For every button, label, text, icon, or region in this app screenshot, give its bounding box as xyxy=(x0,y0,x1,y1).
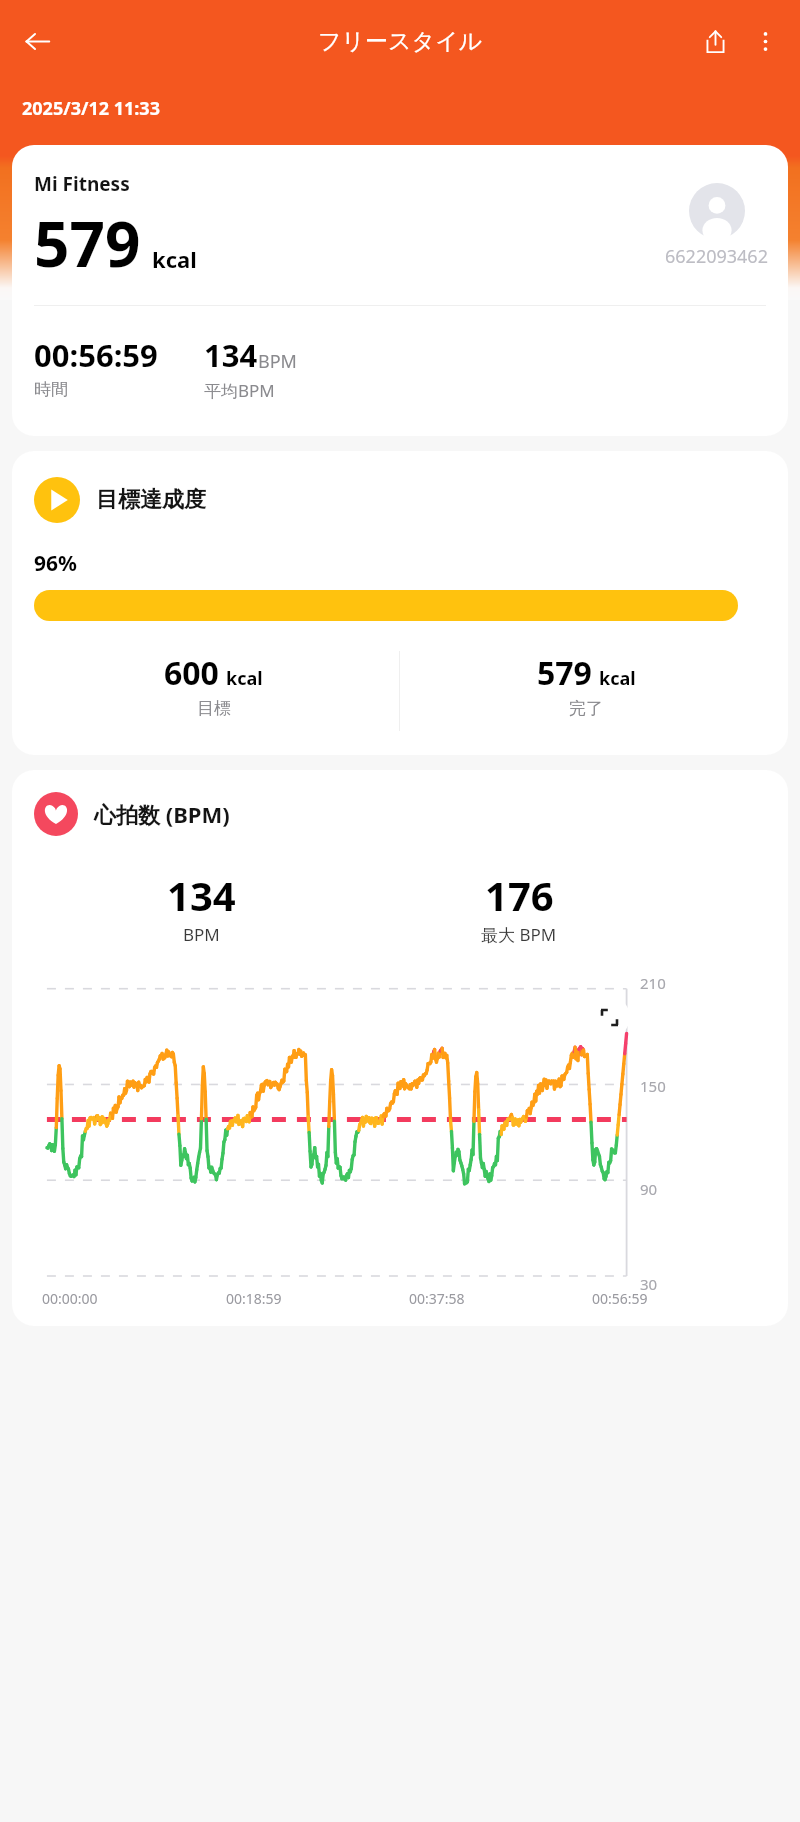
staticText: 最大 BPM xyxy=(481,923,557,946)
staticText: 600 xyxy=(164,651,219,695)
staticText: kcal xyxy=(599,666,636,691)
staticText: 134 xyxy=(167,868,236,922)
staticText: 176 xyxy=(485,868,554,922)
staticText: 579 xyxy=(34,201,141,285)
staticText: 579 xyxy=(537,651,592,695)
staticText: 00:56:59 xyxy=(34,334,158,376)
staticText: BPM xyxy=(258,349,297,374)
staticText: 2025/3/12 11:33 xyxy=(22,96,160,121)
staticText: 96% xyxy=(34,549,77,578)
staticText: Mi Fitness xyxy=(34,171,130,197)
staticText: 00:00:00 xyxy=(42,1289,226,1308)
staticText: 90 xyxy=(640,1179,658,1199)
staticText: 30 xyxy=(640,1274,658,1294)
button[interactable]: Fullscreen xyxy=(588,996,630,1038)
staticText: 平均BPM xyxy=(204,379,275,402)
staticText: 00:37:58 xyxy=(409,1289,592,1308)
button[interactable]: Back xyxy=(12,16,62,66)
staticText: 6622093462 xyxy=(665,244,768,269)
staticText: フリースタイル xyxy=(318,27,483,56)
staticText: 00:56:59 xyxy=(592,1289,648,1308)
button[interactable]: Share xyxy=(690,16,740,66)
button[interactable]: More options xyxy=(740,16,790,66)
staticText: kcal xyxy=(226,666,263,691)
staticText: kcal xyxy=(152,244,197,274)
staticText: BPM xyxy=(183,923,220,946)
staticText: 目標 xyxy=(197,698,231,719)
staticText: 134 xyxy=(204,334,258,376)
staticText: 心拍数 (BPM) xyxy=(94,799,230,829)
staticText: 00:18:59 xyxy=(226,1289,409,1308)
staticText: 150 xyxy=(640,1076,666,1096)
staticText: 時間 xyxy=(34,379,68,400)
staticText: 210 xyxy=(640,973,666,993)
staticText: 完了 xyxy=(569,698,603,719)
staticText: 目標達成度 xyxy=(96,486,206,514)
